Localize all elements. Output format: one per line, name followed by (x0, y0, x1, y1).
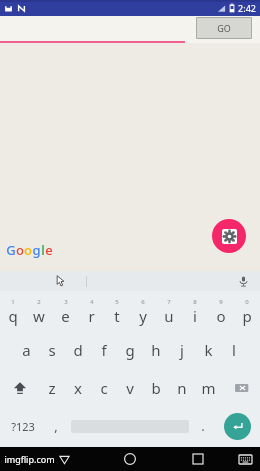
staticText: v (126, 378, 134, 398)
staticText: d (73, 340, 83, 360)
button[interactable]: a (13, 331, 39, 369)
staticText: t (114, 306, 120, 326)
staticText: ?123 (11, 419, 35, 434)
staticText: m (201, 378, 216, 398)
button[interactable]: g (117, 331, 143, 369)
staticText: x (74, 378, 82, 398)
button[interactable]: Switch keyboard (234, 448, 256, 470)
button[interactable]: b (143, 369, 169, 407)
button[interactable]: h (143, 331, 169, 369)
button[interactable]: Recent apps (187, 448, 209, 470)
staticText: r (88, 306, 95, 326)
button[interactable]: x (65, 369, 91, 407)
staticText: l (41, 241, 45, 259)
staticText: j (180, 340, 184, 360)
staticText: o (16, 241, 24, 259)
button[interactable]: 3 (52, 293, 78, 331)
button[interactable]: 9 (208, 293, 234, 331)
button[interactable]: v (117, 369, 143, 407)
staticText: 3 (64, 298, 68, 306)
button[interactable]: Shift (0, 369, 39, 407)
staticText: k (204, 340, 213, 360)
staticText: a (22, 340, 31, 360)
staticText: s (48, 340, 56, 360)
button[interactable]: , (45, 407, 67, 445)
button[interactable] (67, 407, 192, 445)
button[interactable]: Enter (214, 407, 260, 445)
staticText: 2:42 (238, 2, 256, 14)
staticText: o (216, 306, 226, 326)
staticText: 9 (219, 298, 223, 306)
button[interactable]: 2 (26, 293, 52, 331)
staticText: b (151, 378, 161, 398)
button[interactable]: k (195, 331, 221, 369)
staticText: p (242, 306, 252, 326)
staticText: 6 (141, 298, 145, 306)
button[interactable]: m (195, 369, 221, 407)
button[interactable]: d (65, 331, 91, 369)
staticText: 8 (193, 298, 197, 306)
staticText: . (201, 417, 205, 435)
staticText: n (177, 378, 187, 398)
staticText: 4 (90, 298, 94, 306)
button[interactable]: 5 (104, 293, 130, 331)
staticText: l (232, 340, 236, 360)
button[interactable]: 7 (156, 293, 182, 331)
button[interactable]: G (6, 241, 53, 259)
staticText: q (8, 306, 18, 326)
staticText: e (45, 241, 53, 259)
staticText: h (151, 340, 161, 360)
staticText: i (193, 306, 197, 326)
button[interactable]: c (91, 369, 117, 407)
button[interactable]: 1 (0, 293, 26, 331)
staticText: z (48, 378, 56, 398)
staticText: e (61, 306, 70, 326)
button[interactable]: 4 (78, 293, 104, 331)
staticText: u (164, 306, 174, 326)
button[interactable]: f (91, 331, 117, 369)
staticText: c (100, 378, 108, 398)
button[interactable]: Voice input (234, 272, 252, 290)
button[interactable]: 0 (234, 293, 260, 331)
staticText: 2 (37, 298, 41, 306)
button[interactable]: GO (196, 17, 252, 39)
staticText: w (33, 306, 45, 326)
staticText: 0 (245, 298, 249, 306)
button[interactable]: z (39, 369, 65, 407)
button[interactable]: Backspace (221, 369, 260, 407)
button[interactable]: s (39, 331, 65, 369)
staticText: 7 (167, 298, 171, 306)
staticText: o (24, 241, 32, 259)
button[interactable]: Back (55, 450, 73, 468)
staticText: , (54, 417, 58, 435)
staticText: y (139, 306, 147, 326)
button[interactable]: 6 (130, 293, 156, 331)
button[interactable]: Home (119, 448, 141, 470)
button[interactable]: Settings (212, 219, 246, 253)
button[interactable]: n (169, 369, 195, 407)
staticText: 5 (115, 298, 119, 306)
staticText: g (32, 241, 41, 259)
button[interactable] (0, 16, 185, 43)
staticText: G (6, 241, 16, 259)
staticText: imgflip.com (4, 453, 55, 465)
staticText: 1 (11, 298, 15, 306)
button[interactable]: . (192, 407, 214, 445)
staticText: g (125, 340, 135, 360)
button[interactable]: l (221, 331, 247, 369)
button[interactable]: 8 (182, 293, 208, 331)
staticText: f (101, 340, 107, 360)
button[interactable]: j (169, 331, 195, 369)
staticText: GO (217, 22, 231, 34)
button[interactable]: ?123 (0, 407, 45, 445)
